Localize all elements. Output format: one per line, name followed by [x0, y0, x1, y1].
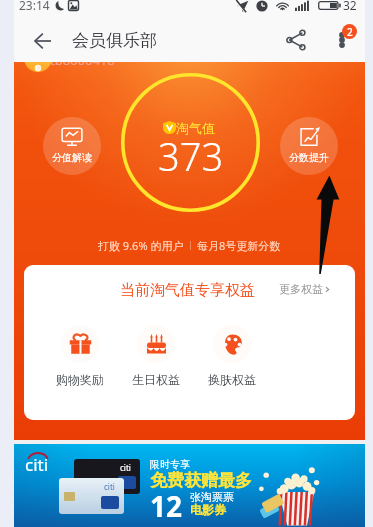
staticText: 2	[347, 25, 353, 39]
staticText: citi	[120, 462, 131, 473]
button[interactable]: 更多权益	[279, 282, 332, 296]
button[interactable]: 换肤权益	[202, 325, 262, 387]
staticText: 分值解读	[52, 151, 92, 164]
staticText: 电影券	[190, 502, 226, 517]
staticText: 会员俱乐部	[72, 30, 157, 51]
staticText: 购物奖励	[56, 372, 104, 387]
staticText: 分数提升	[289, 151, 329, 164]
staticText: 生日权益	[132, 372, 180, 387]
staticText: 更多权益	[279, 282, 323, 296]
staticText: tb8600418	[50, 62, 115, 69]
button[interactable]: Share	[276, 20, 316, 60]
button[interactable]: 分数提升	[280, 117, 338, 175]
staticText: 淘气值	[176, 120, 215, 136]
button[interactable]: 分值解读	[43, 117, 101, 175]
staticText: 32	[343, 0, 357, 13]
staticText: 打败 9.6% 的用户	[98, 238, 184, 253]
staticText: 每月8号更新分数	[197, 238, 281, 253]
button[interactable]: More options	[322, 20, 362, 60]
staticText: 换肤权益	[208, 372, 256, 387]
button[interactable]: Back	[22, 21, 62, 61]
staticText: 免费获赠最多	[150, 470, 252, 491]
staticText: 张淘票票	[190, 490, 234, 504]
button[interactable]: 生日权益	[126, 325, 186, 387]
staticText: 12	[150, 487, 183, 525]
staticText: citi	[25, 453, 49, 476]
staticText: 限时专享	[150, 458, 190, 471]
staticText: 373	[158, 130, 224, 182]
staticText: 当前淘气值专享权益	[120, 281, 255, 300]
button[interactable]: 购物奖励	[50, 325, 110, 387]
staticText: citi	[104, 481, 115, 492]
staticText: 23:14	[19, 0, 50, 13]
